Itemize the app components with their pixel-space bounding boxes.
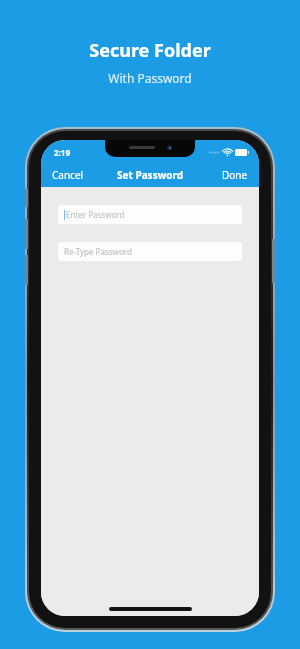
button[interactable]: Done bbox=[211, 164, 259, 186]
button[interactable]: Re-Type Password bbox=[58, 242, 242, 261]
staticText: Re-Type Password bbox=[64, 246, 132, 257]
staticText: Done bbox=[222, 168, 248, 182]
staticText: Enter Password bbox=[66, 209, 125, 220]
staticText: Cancel bbox=[52, 168, 84, 182]
staticText: With Password bbox=[108, 70, 192, 86]
button[interactable]: Enter Password bbox=[58, 205, 242, 224]
button[interactable]: Cancel bbox=[41, 164, 95, 186]
staticText: Secure Folder bbox=[89, 38, 211, 63]
staticText: Set Password bbox=[117, 168, 184, 182]
staticText: 2:19 bbox=[54, 147, 70, 158]
